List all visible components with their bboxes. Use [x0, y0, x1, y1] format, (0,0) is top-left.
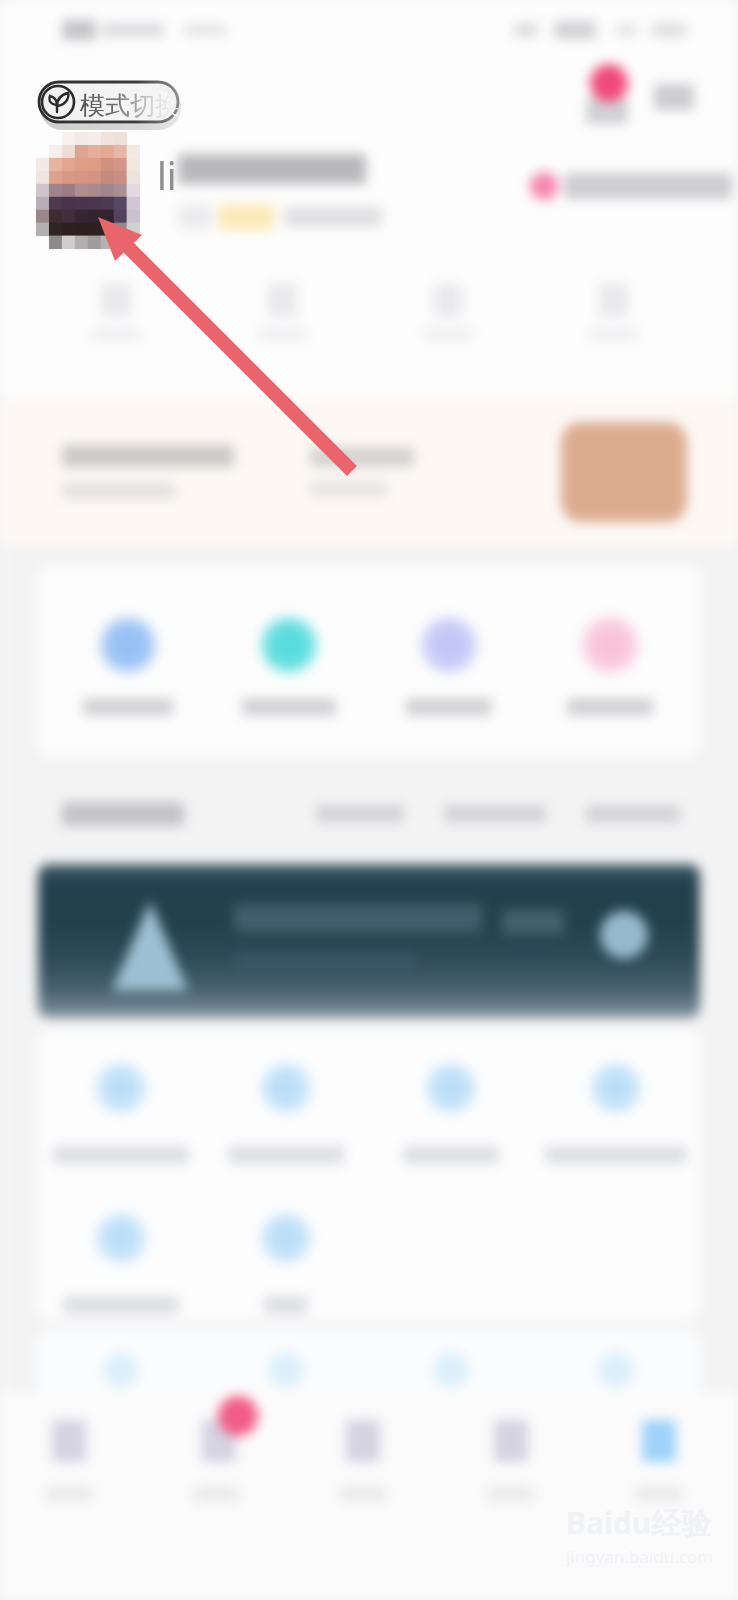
button[interactable]	[203, 1212, 368, 1314]
button[interactable]: Notifications	[590, 64, 628, 102]
button[interactable]: Avatar	[36, 132, 140, 250]
button[interactable]	[369, 616, 529, 716]
button[interactable]	[38, 1212, 203, 1314]
button[interactable]	[561, 422, 687, 522]
staticText: 模式切换	[80, 90, 180, 121]
button[interactable]	[38, 864, 700, 1018]
button[interactable]	[203, 1062, 368, 1164]
button[interactable]	[382, 283, 514, 341]
button[interactable]	[216, 283, 348, 341]
button[interactable]	[38, 1062, 203, 1164]
button[interactable]	[209, 616, 369, 716]
button[interactable]	[50, 283, 182, 341]
button[interactable]	[533, 1062, 698, 1164]
button[interactable]: Messages	[142, 1420, 289, 1502]
button[interactable]: 模式切换	[30, 70, 250, 132]
staticText: li	[157, 149, 177, 201]
button[interactable]: Services	[437, 1420, 585, 1502]
staticText: jingyan.baidu.com	[566, 1545, 714, 1568]
button[interactable]: Discover	[289, 1420, 437, 1502]
button[interactable]	[530, 616, 690, 716]
button[interactable]: Home	[0, 1420, 142, 1502]
button[interactable]	[548, 283, 680, 341]
staticText: Baidu经验	[566, 1502, 712, 1543]
button[interactable]	[48, 616, 208, 716]
button[interactable]	[368, 1062, 533, 1164]
button[interactable]: Mine	[585, 1420, 733, 1502]
